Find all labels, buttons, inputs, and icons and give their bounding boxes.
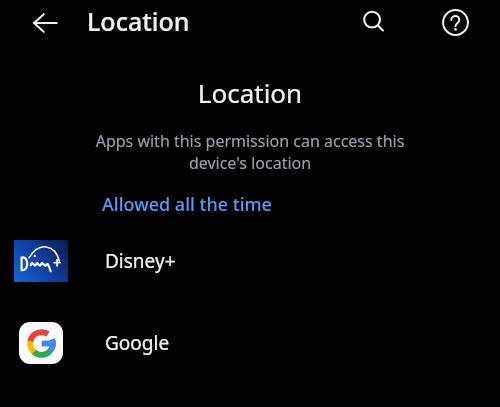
button[interactable]: Back <box>22 0 68 46</box>
button[interactable]: Search <box>352 0 396 44</box>
staticText: Allowed all the time <box>102 192 272 217</box>
staticText: Google <box>105 330 170 356</box>
staticText: Location <box>87 4 190 38</box>
button[interactable]: Help <box>433 0 477 44</box>
button[interactable]: Google <box>0 321 500 365</box>
staticText: Location <box>0 75 500 110</box>
staticText: Apps with this permission can access thi… <box>38 130 462 174</box>
button[interactable]: Disney+ <box>0 239 500 283</box>
staticText: Disney+ <box>105 248 176 274</box>
